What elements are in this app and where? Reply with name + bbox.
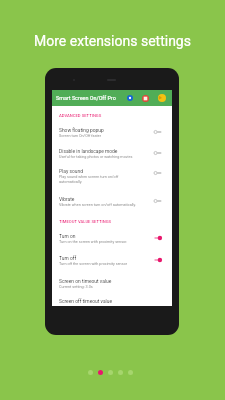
staticText: ADVANCED SETTINGS (59, 113, 102, 118)
button[interactable]: Switch on (154, 257, 162, 263)
button[interactable]: Page 5 (128, 370, 133, 375)
staticText: Play sound when screen turn on/off autom… (59, 175, 141, 184)
staticText: Show floating popup (59, 127, 104, 133)
staticText: TIMEOUT VALUE SETTINGS (59, 219, 112, 224)
staticText: Turn off (59, 255, 77, 261)
button[interactable]: Turn on (52, 232, 172, 245)
button[interactable]: Switch off (154, 150, 162, 156)
button[interactable]: Page 3 (108, 370, 113, 375)
button[interactable]: Disable in landscape mode (52, 147, 172, 160)
button[interactable]: Switch on (154, 235, 162, 241)
button[interactable]: Screen off timeout value (52, 297, 172, 305)
staticText: Play sound (59, 168, 83, 174)
button[interactable]: Rate app (142, 95, 149, 102)
staticText: Screen off timeout value (59, 298, 113, 304)
button[interactable]: Switch off (154, 198, 162, 204)
staticText: Screen turn On/Off faster (59, 134, 102, 138)
button[interactable]: Page 2 (98, 370, 103, 375)
staticText: Turn on (59, 233, 76, 239)
staticText: Disable in landscape mode (59, 148, 118, 154)
staticText: Turn on the screen with proximity sensor… (59, 240, 128, 244)
button[interactable]: Switch off (154, 170, 162, 176)
staticText: Smart Screen On/Off Pro (56, 95, 116, 101)
button[interactable]: Switch off (154, 129, 162, 135)
staticText: Vibrate when screen turn on/off automati… (59, 203, 137, 207)
staticText: Useful for taking photos or watching mov… (59, 155, 133, 159)
button[interactable]: Turn off (52, 254, 172, 267)
button[interactable]: Vibrate (52, 195, 172, 208)
button[interactable]: More options (158, 94, 166, 102)
staticText: More extensions settings (0, 33, 225, 49)
staticText: Current setting: 3.0s (59, 285, 93, 289)
button[interactable]: Page 4 (118, 370, 123, 375)
button[interactable]: Show floating popup (52, 126, 172, 139)
staticText: Screen on timeout value (59, 278, 112, 284)
button[interactable]: Screen on timeout value (52, 277, 172, 290)
button[interactable]: Info (127, 95, 133, 101)
button[interactable]: Play sound (52, 167, 172, 185)
staticText: Vibrate (59, 196, 75, 202)
staticText: Turn off the screen with proximity senso… (59, 262, 128, 266)
button[interactable]: Page 1 (88, 370, 93, 375)
